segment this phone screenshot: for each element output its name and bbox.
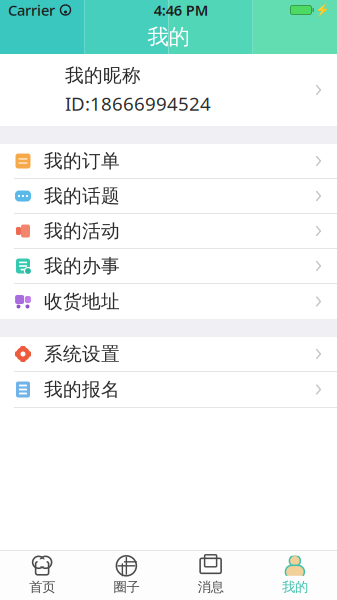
staticText: Carrier (8, 0, 55, 20)
staticText: 我的 (147, 24, 189, 50)
staticText: ID:18666994524 (65, 91, 211, 116)
staticText: 我的报名 (44, 378, 120, 401)
button[interactable]: 收货地址 (0, 284, 337, 319)
button[interactable]: 我的昵称 (0, 54, 337, 126)
staticText: ⚡ (315, 3, 330, 17)
button[interactable]: 消息 (168, 550, 253, 600)
button[interactable]: 我的订单 (0, 144, 337, 179)
staticText: 我的话题 (44, 184, 120, 207)
staticText: 我的办事 (44, 254, 120, 277)
staticText: 收货地址 (44, 290, 120, 313)
staticText: 首页 (29, 579, 55, 595)
button[interactable]: 首页 (0, 550, 84, 600)
button[interactable]: 我的报名 (0, 372, 337, 407)
staticText: 我的活动 (44, 219, 120, 242)
staticText: 我的 (282, 579, 308, 595)
staticText: 我的昵称 (65, 64, 141, 87)
button[interactable]: 我的活动 (0, 214, 337, 249)
button[interactable]: 我的话题 (0, 179, 337, 214)
staticText: 系统设置 (44, 342, 120, 365)
staticText: 4:46 PM (154, 0, 209, 20)
staticText: 圈子 (113, 579, 139, 595)
button[interactable]: 我的 (253, 550, 337, 600)
staticText: 消息 (198, 579, 224, 595)
button[interactable]: 我的办事 (0, 249, 337, 284)
button[interactable]: 圈子 (84, 550, 168, 600)
button[interactable]: 系统设置 (0, 337, 337, 372)
staticText: 我的订单 (44, 149, 120, 172)
